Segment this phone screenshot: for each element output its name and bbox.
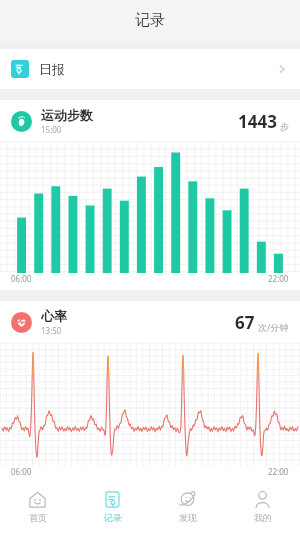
button[interactable]: 日报 (0, 49, 300, 89)
staticText: 22:00 (268, 273, 289, 284)
other: 发现 (178, 490, 197, 509)
staticText: 1443 (238, 110, 277, 133)
staticText: 记录 (104, 512, 122, 523)
staticText: 首页 (29, 512, 47, 523)
staticText: 运动步数 (41, 107, 93, 123)
staticText: 22:00 (268, 466, 289, 477)
staticText: 步 (280, 121, 289, 132)
staticText: 发现 (179, 512, 197, 523)
staticText: 13:50 (41, 325, 62, 336)
button[interactable]: 首页 (0, 483, 75, 533)
button[interactable]: 运动步数 (0, 100, 300, 290)
staticText: 06:00 (11, 466, 32, 477)
button[interactable]: 心率 (0, 301, 300, 483)
staticText: 记录 (135, 11, 165, 30)
staticText: 我的 (254, 512, 272, 523)
staticText: 67 (235, 311, 255, 334)
other: 首页 (28, 490, 47, 509)
staticText: 次/分钟 (258, 321, 289, 333)
other: 记录 (103, 490, 122, 509)
staticText: 日报 (39, 61, 65, 77)
other: 我的 (253, 490, 272, 509)
staticText: 15:00 (41, 124, 62, 135)
button[interactable]: 发现 (150, 483, 225, 533)
staticText: 心率 (41, 308, 67, 324)
button[interactable]: 我的 (225, 483, 300, 533)
staticText: 06:00 (11, 273, 32, 284)
button[interactable]: 记录 (75, 483, 150, 533)
